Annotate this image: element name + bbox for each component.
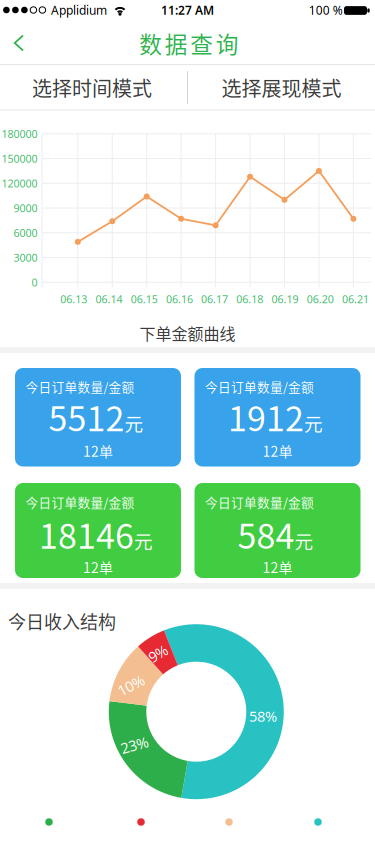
staticText: 12单 [83, 441, 113, 461]
staticText: 120000 [1, 176, 37, 190]
staticText: 6000 [13, 226, 37, 240]
staticText: 58% [249, 706, 277, 726]
staticText: 06.15 [131, 292, 158, 306]
staticText: 下单金额曲线 [139, 321, 235, 345]
staticText: 元 [134, 527, 153, 554]
button[interactable]: 选择时间模式 [0, 65, 185, 109]
staticText: 584 [237, 509, 294, 559]
button[interactable]: 选择展现模式 [188, 65, 374, 109]
staticText: 9% [148, 644, 168, 663]
staticText: 0 [31, 275, 37, 289]
staticText: 06.14 [95, 292, 122, 306]
staticText: 12单 [83, 557, 113, 577]
staticText: 今日收入结构 [8, 608, 116, 634]
staticText: 06.17 [201, 292, 228, 306]
staticText: 23% [120, 735, 148, 755]
staticText: 06.18 [236, 292, 263, 306]
staticText: 元 [294, 527, 313, 554]
staticText: 18146 [39, 509, 134, 559]
staticText: 选择展现模式 [221, 73, 341, 102]
staticText: 选择时间模式 [32, 73, 152, 102]
staticText: 今日订单数量/金额 [205, 377, 314, 396]
button[interactable]: 今日订单数量/金额 [194, 368, 360, 466]
staticText: 06.19 [272, 292, 299, 306]
staticText: 150000 [1, 151, 37, 166]
staticText: 11:27 AM [161, 2, 214, 18]
staticText: 数据查询 [139, 27, 239, 59]
staticText: 今日订单数量/金额 [25, 493, 134, 511]
staticText: 5512 [48, 392, 124, 441]
staticText: 06.16 [166, 292, 193, 306]
staticText: 100 % [309, 2, 343, 18]
staticText: 06.13 [60, 292, 87, 306]
staticText: 12单 [262, 557, 292, 577]
button[interactable] [5, 26, 33, 60]
button[interactable]: 今日订单数量/金额 [15, 483, 181, 578]
staticText: Applidium [51, 2, 107, 18]
button[interactable]: 今日订单数量/金额 [15, 368, 181, 466]
staticText: 06.21 [342, 292, 369, 306]
staticText: 3000 [13, 250, 37, 265]
staticText: 180000 [1, 127, 37, 141]
staticText: 今日订单数量/金额 [205, 493, 314, 511]
staticText: 06.20 [307, 292, 334, 306]
staticText: 10% [117, 676, 145, 695]
staticText: 12单 [262, 441, 292, 461]
staticText: 9000 [13, 201, 37, 215]
staticText: 元 [304, 410, 323, 437]
staticText: 今日订单数量/金额 [25, 377, 134, 396]
staticText: 1912 [228, 392, 304, 441]
button[interactable]: 今日订单数量/金额 [194, 483, 360, 578]
staticText: 元 [124, 410, 143, 437]
